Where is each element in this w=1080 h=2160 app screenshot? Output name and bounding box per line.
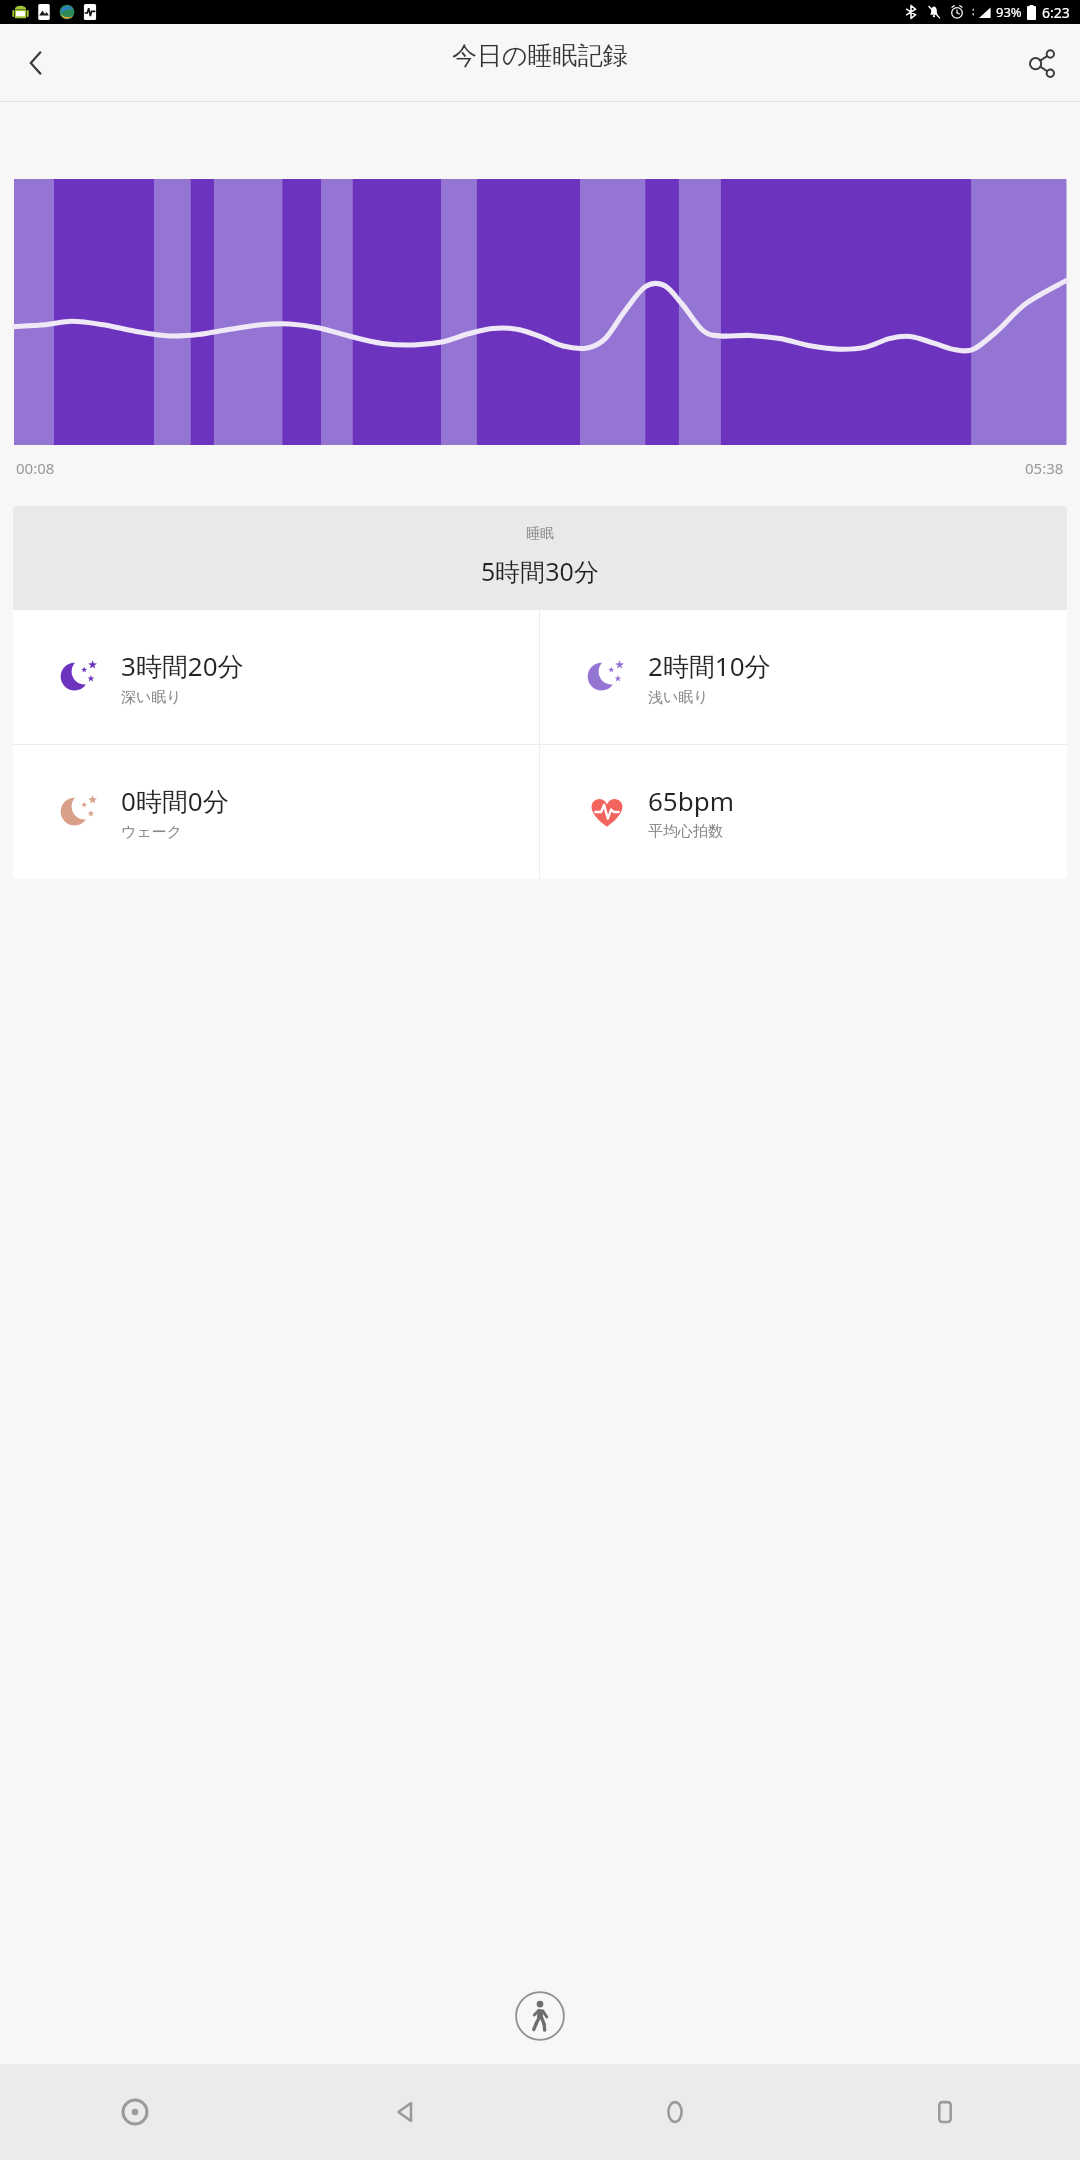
staticText: 2時間10分 [648, 648, 771, 684]
button[interactable]: Recents [810, 2064, 1080, 2160]
staticText: 深い眠り [121, 688, 182, 707]
button[interactable]: 65bpm [540, 745, 1067, 879]
button[interactable]: Back [8, 35, 64, 91]
button[interactable]: Share [1014, 35, 1070, 91]
staticText: 0時間0分 [121, 783, 229, 819]
staticText: 05:38 [1025, 458, 1064, 478]
button[interactable]: Home [540, 2064, 810, 2160]
button[interactable]: 2時間10分 [540, 610, 1067, 744]
button[interactable]: 0時間0分 [13, 745, 539, 879]
staticText: 6:23 [1042, 3, 1070, 22]
button[interactable]: 3時間20分 [13, 610, 539, 744]
button[interactable]: Back [270, 2064, 540, 2160]
button[interactable]: Steps [512, 1988, 568, 2044]
staticText: 3時間20分 [121, 648, 244, 684]
staticText: 00:08 [16, 458, 55, 478]
staticText: 浅い眠り [648, 688, 709, 707]
staticText: 今日の睡眠記録 [452, 40, 628, 71]
button[interactable]: Assistant [0, 2064, 270, 2160]
staticText: 5時間30分 [481, 554, 599, 588]
staticText: 平均心拍数 [648, 822, 723, 841]
staticText: 睡眠 [526, 525, 554, 543]
staticText: 65bpm [648, 783, 735, 818]
staticText: 93% [996, 3, 1022, 21]
staticText: ウェーク [121, 823, 183, 842]
